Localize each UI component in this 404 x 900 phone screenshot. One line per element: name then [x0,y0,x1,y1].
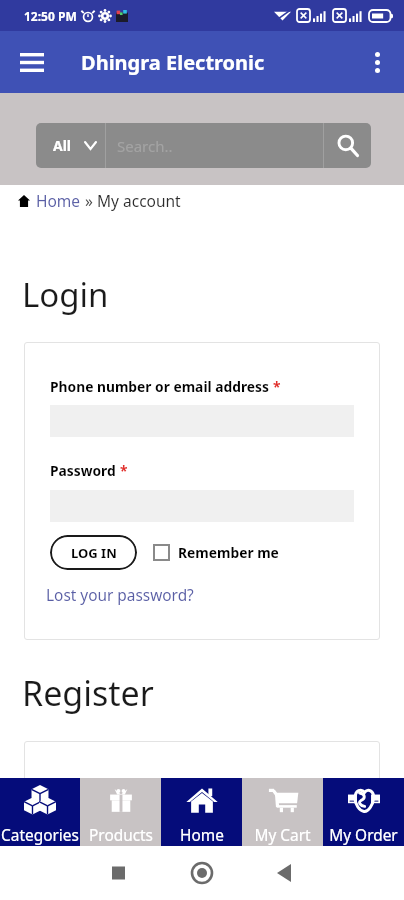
button[interactable]: My Cart [242,778,323,846]
staticText: Products [89,825,153,846]
button[interactable]: Home [36,190,81,211]
staticText: LOG IN [71,544,117,562]
staticText: Search.. [117,136,173,156]
button[interactable]: Products [80,778,161,846]
button[interactable]: Search [324,123,371,168]
staticText: Register [22,670,154,716]
button[interactable]: Lost your password? [46,585,194,606]
staticText: All [53,136,72,155]
button[interactable]: My Order [323,778,404,846]
button[interactable]: More options [356,41,398,83]
button[interactable]: All [36,123,105,168]
staticText: Password [50,461,120,480]
staticText: My Cart [254,825,311,846]
staticText: My Order [329,825,398,846]
staticText: My account [97,190,181,211]
button[interactable]: LOG IN [50,535,137,570]
staticText: Categories [1,825,79,846]
button[interactable]: Remember me [153,535,279,570]
button[interactable]: Open navigation menu [10,40,54,84]
button[interactable]: Categories [0,778,80,846]
staticText: Dhingra Electronic [81,49,265,76]
staticText: 12:50 PM [24,8,77,24]
staticText: * [120,461,128,480]
staticText: Remember me [178,543,279,562]
button[interactable]: Home [161,778,242,846]
staticText: Phone number or email address [50,377,273,396]
staticText: Home [180,825,224,846]
staticText: * [273,377,281,396]
staticText: » [81,190,97,211]
staticText: Login [22,272,109,317]
